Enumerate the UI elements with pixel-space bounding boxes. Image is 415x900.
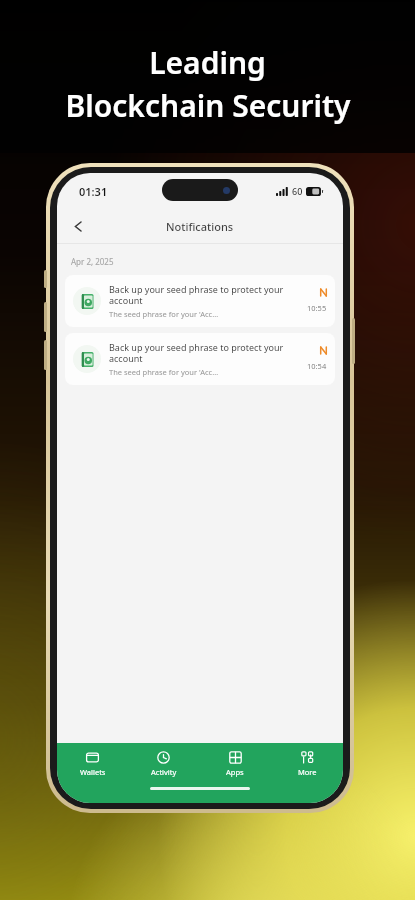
staticText: Blockchain Security <box>65 85 351 126</box>
button[interactable]: Apps <box>199 743 271 785</box>
staticText: Notifications <box>166 219 234 234</box>
button[interactable]: Activity <box>128 743 199 785</box>
button[interactable]: Wallets <box>57 743 128 785</box>
button[interactable]: Back <box>63 211 93 241</box>
staticText: Back up your seed phrase to protect your… <box>109 283 303 307</box>
staticText: Apps <box>226 767 244 777</box>
staticText: Apr 2, 2025 <box>71 256 114 267</box>
staticText: Leading <box>149 42 266 83</box>
staticText: More <box>298 767 317 777</box>
staticText: 01:31 <box>79 184 108 199</box>
staticText: The seed phrase for your 'Acc… <box>109 309 219 319</box>
staticText: The seed phrase for your 'Acc… <box>109 367 219 377</box>
button[interactable]: Back up your seed phrase to protect your… <box>65 333 335 385</box>
staticText: 10:54 <box>307 361 327 371</box>
staticText: 10:55 <box>307 303 327 313</box>
staticText: Activity <box>151 767 177 777</box>
button[interactable]: Back up your seed phrase to protect your… <box>65 275 335 327</box>
staticText: Back up your seed phrase to protect your… <box>109 341 303 365</box>
staticText: Wallets <box>80 767 106 777</box>
staticText: 60 <box>292 185 303 197</box>
button[interactable]: More <box>271 743 343 785</box>
